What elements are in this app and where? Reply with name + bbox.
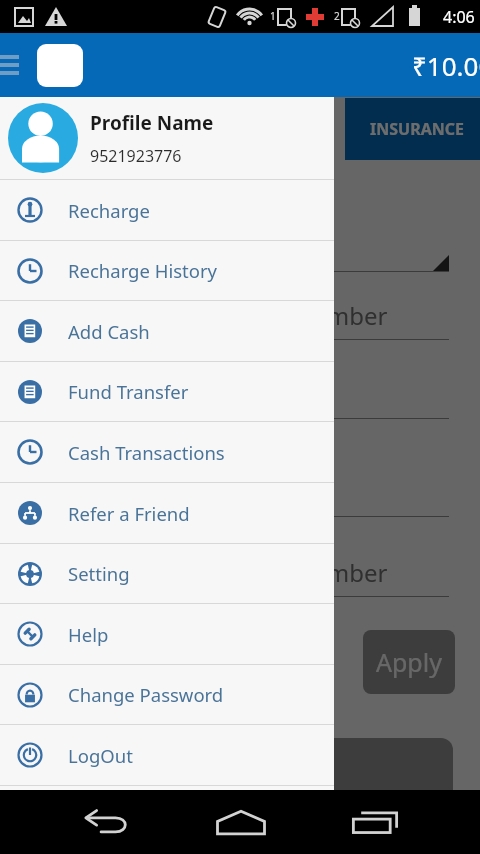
staticText: LogOut bbox=[68, 743, 133, 768]
staticText: Enter Mobile Number bbox=[144, 299, 388, 331]
button[interactable]: Apply bbox=[363, 630, 455, 694]
button[interactable]: LogOut bbox=[0, 725, 334, 785]
button[interactable]: Recharge bbox=[0, 180, 334, 240]
staticText: Recharge bbox=[68, 198, 150, 223]
button[interactable]: Cash Transactions bbox=[0, 422, 334, 482]
button[interactable]: Home bbox=[214, 797, 268, 847]
button[interactable]: INSURANCE bbox=[345, 98, 480, 160]
staticText: Fund Transfer bbox=[68, 379, 189, 404]
button[interactable]: Help bbox=[0, 604, 334, 664]
button[interactable]: Recharge History bbox=[0, 241, 334, 300]
staticText: Cash Transactions bbox=[68, 440, 225, 465]
button[interactable]: Fund Transfer bbox=[0, 362, 334, 421]
staticText: Profile Name bbox=[90, 110, 214, 136]
button[interactable]: Setting bbox=[0, 544, 334, 603]
staticText: Refer a Friend bbox=[68, 501, 190, 526]
button[interactable]: Back bbox=[78, 797, 134, 847]
staticText: Add Cash bbox=[68, 319, 150, 344]
button[interactable]: App logo bbox=[37, 44, 83, 87]
staticText: Setting bbox=[68, 561, 130, 586]
button[interactable]: Recent apps bbox=[349, 797, 401, 847]
staticText: Change Password bbox=[68, 682, 224, 707]
staticText: 2 bbox=[334, 9, 340, 23]
staticText: Enter Mobile Number bbox=[144, 556, 388, 588]
button[interactable]: Refer a Friend bbox=[0, 483, 334, 543]
staticText: Apply bbox=[376, 645, 442, 679]
staticText: 9521923776 bbox=[90, 145, 182, 167]
staticText: Recharge History bbox=[68, 258, 217, 283]
button[interactable] bbox=[14, 738, 453, 808]
staticText: ₹10.00 bbox=[412, 48, 480, 83]
button[interactable]: Open navigation drawer bbox=[0, 33, 30, 97]
staticText: 1 bbox=[270, 9, 276, 23]
staticText: 4:06 bbox=[443, 6, 475, 28]
staticText: Help bbox=[68, 622, 109, 647]
staticText: INSURANCE bbox=[370, 118, 464, 140]
button[interactable]: Profile Name bbox=[0, 97, 334, 179]
button[interactable]: Add Cash bbox=[0, 301, 334, 361]
button[interactable]: Change Password bbox=[0, 665, 334, 724]
